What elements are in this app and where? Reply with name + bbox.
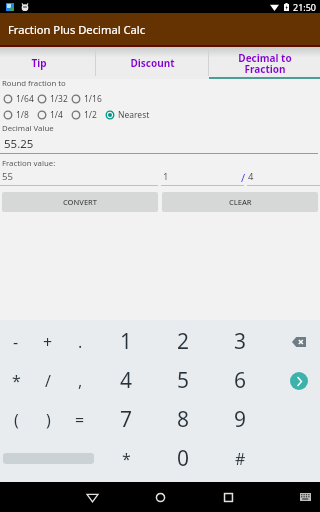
button[interactable]: -: [0, 322, 32, 361]
staticText: 1: [120, 327, 133, 356]
staticText: 2: [177, 327, 190, 356]
button[interactable]: (: [0, 400, 32, 439]
button[interactable]: Recents: [214, 482, 242, 512]
button[interactable]: Back: [78, 482, 106, 512]
staticText: =: [75, 409, 85, 431]
button[interactable]: 55: [0, 170, 158, 192]
staticText: 4: [120, 366, 133, 395]
staticText: 1/4: [50, 109, 63, 121]
button[interactable]: /: [247, 170, 320, 192]
button[interactable]: 1/8: [3, 107, 37, 122]
button[interactable]: 1/2: [71, 107, 105, 122]
button[interactable]: 1/32: [37, 91, 71, 106]
button[interactable]: Backspace: [269, 322, 320, 361]
staticText: 1/64: [16, 93, 34, 105]
staticText: Round fraction to: [2, 78, 66, 89]
staticText: 55.25: [4, 136, 34, 152]
button[interactable]: 6: [212, 361, 269, 400]
button[interactable]: 3: [212, 322, 269, 361]
button[interactable]: 7: [98, 400, 155, 439]
staticText: CLEAR: [229, 197, 252, 207]
button[interactable]: .: [64, 322, 96, 361]
button[interactable]: CLEAR: [162, 192, 318, 212]
staticText: 9: [234, 405, 247, 434]
button[interactable]: Space: [0, 439, 96, 478]
button[interactable]: Discount: [96, 47, 209, 79]
staticText: ,: [78, 370, 83, 392]
staticText: +: [43, 331, 53, 353]
button[interactable]: 1/16: [71, 91, 105, 106]
button[interactable]: =: [64, 400, 96, 439]
button[interactable]: *: [0, 361, 32, 400]
staticText: 1/32: [50, 93, 68, 105]
staticText: 5: [177, 366, 190, 395]
staticText: 0: [177, 444, 190, 473]
button[interactable]: +: [32, 322, 64, 361]
staticText: ): [46, 409, 51, 431]
staticText: Decimal Value: [2, 123, 54, 134]
button[interactable]: ,: [64, 361, 96, 400]
button[interactable]: 0: [155, 439, 212, 478]
staticText: Nearest: [118, 109, 150, 121]
button[interactable]: 1/64: [3, 91, 37, 106]
staticText: *: [122, 448, 131, 470]
staticText: 21:50: [293, 1, 317, 13]
staticText: 3: [234, 327, 247, 356]
button[interactable]: ): [32, 400, 64, 439]
button[interactable]: Switch keyboard: [296, 482, 314, 512]
staticText: Decimal to Fraction: [238, 51, 292, 76]
staticText: 55: [2, 170, 13, 183]
staticText: Discount: [130, 56, 175, 70]
button[interactable]: /: [32, 361, 64, 400]
button[interactable]: #: [212, 439, 269, 478]
staticText: 1/16: [84, 93, 102, 105]
button[interactable]: 9: [212, 400, 269, 439]
button[interactable]: 2: [155, 322, 212, 361]
staticText: -: [13, 331, 19, 353]
staticText: Tip: [31, 56, 47, 70]
staticText: *: [12, 370, 21, 392]
button[interactable]: 4: [98, 361, 155, 400]
button[interactable]: Enter: [269, 361, 320, 400]
button[interactable]: 5: [155, 361, 212, 400]
staticText: 6: [234, 366, 247, 395]
staticText: 4: [248, 170, 254, 183]
button[interactable]: 1/4: [37, 107, 71, 122]
button[interactable]: Decimal to Fraction: [209, 47, 320, 79]
staticText: 1: [163, 170, 169, 183]
staticText: 1/2: [84, 109, 97, 121]
button[interactable]: Nearest: [105, 107, 165, 122]
button[interactable]: CONVERT: [2, 192, 158, 212]
staticText: Fraction Plus Decimal Calc: [8, 22, 146, 37]
staticText: 1/8: [16, 109, 29, 121]
staticText: CONVERT: [63, 197, 98, 207]
button[interactable]: 8: [155, 400, 212, 439]
staticText: /: [241, 170, 246, 185]
button[interactable]: Tip: [0, 47, 78, 79]
staticText: Fraction value:: [2, 158, 56, 169]
staticText: .: [78, 331, 83, 353]
staticText: 8: [177, 405, 190, 434]
staticText: #: [235, 448, 246, 470]
staticText: 7: [120, 405, 133, 434]
button[interactable]: 1: [98, 322, 155, 361]
button[interactable]: *: [98, 439, 155, 478]
staticText: /: [45, 370, 51, 392]
staticText: (: [14, 409, 19, 431]
button[interactable]: Home: [146, 482, 174, 512]
button[interactable]: 1: [161, 170, 244, 192]
